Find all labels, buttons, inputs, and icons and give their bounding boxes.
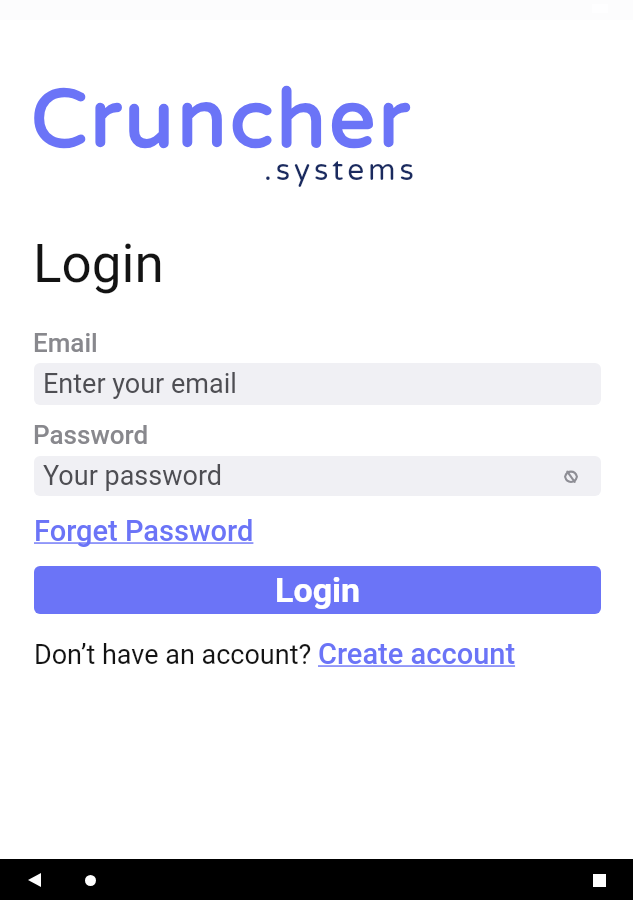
- staticText: Enter your email: [43, 368, 237, 400]
- button[interactable]: Home: [72, 862, 108, 898]
- staticText: Your password: [43, 460, 223, 492]
- button[interactable]: Enter your email: [34, 363, 601, 405]
- staticText: Login: [33, 233, 164, 295]
- button[interactable]: Your password: [34, 456, 601, 496]
- staticText: Password: [33, 420, 149, 450]
- button[interactable]: Show password: [558, 463, 584, 489]
- button[interactable]: Login: [34, 566, 601, 614]
- staticText: .systems: [264, 152, 418, 188]
- button[interactable]: Back: [16, 862, 52, 898]
- button[interactable]: Create account: [318, 637, 516, 671]
- staticText: Don’t have an account?: [34, 639, 318, 671]
- staticText: Login: [275, 570, 361, 610]
- staticText: Cruncher: [31, 72, 413, 170]
- staticText: Email: [33, 328, 98, 358]
- button[interactable]: Forget Password: [34, 514, 254, 548]
- button[interactable]: Recent apps: [581, 862, 617, 898]
